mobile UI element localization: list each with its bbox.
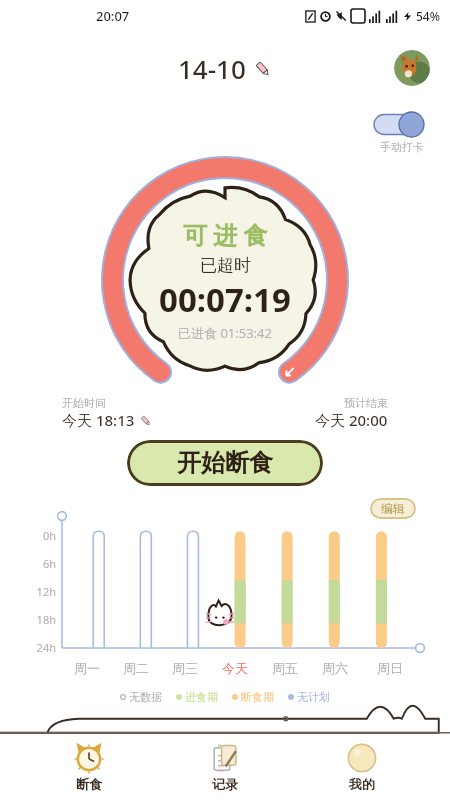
button[interactable]: 记录 — [177, 739, 273, 794]
staticText: 周五 — [272, 660, 298, 676]
staticText: 14-10 — [178, 51, 246, 86]
button[interactable]: Manual check-in toggle — [374, 112, 424, 137]
staticText: 开始断食 — [177, 448, 273, 478]
staticText: 今天 20:00 — [315, 410, 388, 430]
staticText: 预计结束 — [344, 396, 388, 410]
button[interactable]: 14-10 — [178, 51, 272, 86]
button[interactable]: 开始时间 — [62, 396, 152, 430]
button[interactable]: 编辑 — [381, 501, 405, 516]
staticText: 周六 — [322, 660, 348, 676]
staticText: 已进食 01:53:42 — [178, 324, 272, 342]
staticText: 00:07:19 — [159, 277, 291, 322]
staticText: 12h — [26, 584, 56, 599]
staticText: 周一 — [74, 660, 100, 676]
staticText: 已超时 — [200, 255, 251, 276]
staticText: 周二 — [123, 660, 149, 676]
staticText: 20:07 — [96, 7, 130, 25]
other: Edit date — [253, 59, 272, 78]
staticText: 今天 — [222, 660, 248, 676]
staticText: 54% — [416, 8, 440, 24]
button[interactable]: 开始断食 — [127, 440, 323, 486]
staticText: 我的 — [349, 776, 375, 792]
button[interactable]: 预计结束 — [315, 396, 388, 430]
staticText: 手动打卡 — [380, 140, 424, 154]
staticText: 24h — [26, 640, 56, 652]
button[interactable]: Profile — [394, 50, 430, 86]
staticText: 0h — [26, 528, 56, 543]
staticText: 记录 — [212, 776, 238, 792]
staticText: 断食 — [76, 776, 102, 792]
staticText: 开始时间 — [62, 396, 106, 410]
button[interactable]: 断食 — [41, 739, 137, 794]
staticText: 周日 — [377, 660, 403, 676]
staticText: 进食期 — [185, 690, 218, 704]
staticText: 断食期 — [241, 690, 274, 704]
staticText: 无数据 — [129, 690, 162, 704]
staticText: 18h — [26, 612, 56, 627]
staticText: 无计划 — [297, 690, 330, 704]
staticText: 6h — [26, 556, 56, 571]
staticText: 编辑 — [381, 501, 405, 516]
staticText: 周三 — [172, 660, 198, 676]
staticText: 今天 18:13 — [62, 410, 135, 430]
staticText: 可 进 食 — [183, 218, 268, 251]
button[interactable]: 我的 — [314, 739, 410, 794]
